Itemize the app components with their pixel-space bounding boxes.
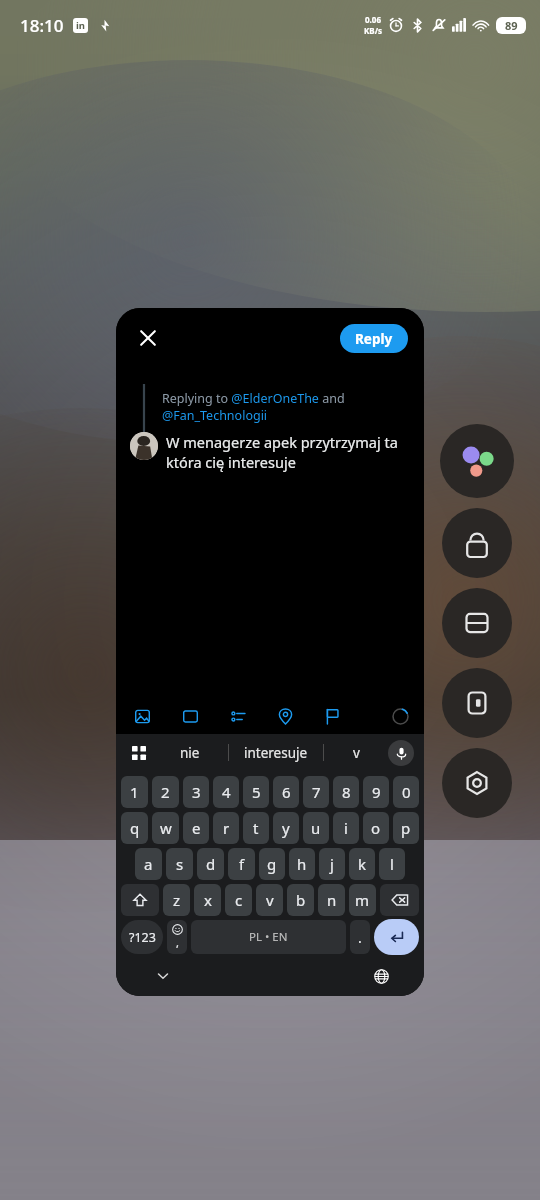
staticText: in xyxy=(76,19,86,32)
staticText: 7 xyxy=(312,782,321,802)
button[interactable]: 6 xyxy=(273,776,299,808)
button[interactable]: d xyxy=(197,848,224,880)
staticText: z xyxy=(173,890,181,910)
staticText: 5 xyxy=(252,782,261,802)
staticText: n xyxy=(327,890,337,910)
staticText: u xyxy=(311,818,321,838)
button[interactable]: g xyxy=(259,848,285,880)
button[interactable]: Change language xyxy=(368,963,394,989)
button[interactable]: z xyxy=(163,884,190,916)
button[interactable]: w xyxy=(152,812,179,844)
staticText: . xyxy=(358,928,362,947)
button[interactable]: 3 xyxy=(183,776,209,808)
button[interactable]: Community note xyxy=(320,704,344,728)
button[interactable]: 8 xyxy=(333,776,359,808)
button[interactable]: 4 xyxy=(213,776,239,808)
button[interactable]: Emoji xyxy=(167,920,187,954)
button[interactable]: Assistant xyxy=(440,424,514,498)
staticText: 1 xyxy=(130,782,139,802)
staticText: 0 xyxy=(402,782,411,802)
staticText: 89 xyxy=(505,18,518,33)
staticText: nie xyxy=(180,744,200,762)
button[interactable]: j xyxy=(319,848,345,880)
button[interactable]: k xyxy=(349,848,375,880)
button[interactable]: Split screen xyxy=(442,588,512,658)
staticText: v xyxy=(353,744,360,762)
staticText: 2 xyxy=(161,782,170,802)
staticText: f xyxy=(239,854,245,874)
staticText: j xyxy=(330,854,334,874)
staticText: s xyxy=(176,854,184,874)
staticText: PL • EN xyxy=(249,929,288,945)
button[interactable]: 0 xyxy=(393,776,419,808)
button[interactable]: p xyxy=(393,812,419,844)
staticText: 18:10 xyxy=(20,14,64,37)
staticText: q xyxy=(130,818,140,838)
button[interactable]: Add photo xyxy=(130,704,154,728)
button[interactable]: i xyxy=(333,812,359,844)
staticText: 9 xyxy=(372,782,381,802)
button[interactable]: f xyxy=(228,848,255,880)
staticText: l xyxy=(390,854,394,874)
button[interactable]: Backspace xyxy=(380,884,419,916)
button[interactable]: 7 xyxy=(303,776,329,808)
staticText: w xyxy=(160,818,172,838)
button[interactable]: x xyxy=(194,884,221,916)
button[interactable]: 5 xyxy=(243,776,269,808)
staticText: g xyxy=(267,854,277,874)
button[interactable]: Hide keyboard xyxy=(150,963,176,989)
button[interactable]: v xyxy=(256,884,283,916)
button[interactable]: Add location xyxy=(273,704,297,728)
staticText: t xyxy=(253,818,259,838)
button[interactable]: Shift xyxy=(121,884,159,916)
button[interactable]: u xyxy=(303,812,329,844)
staticText: , xyxy=(176,935,179,950)
button[interactable]: Add poll xyxy=(226,704,250,728)
button[interactable]: Reply xyxy=(340,324,408,353)
button[interactable]: m xyxy=(349,884,376,916)
button[interactable]: Voice input xyxy=(388,740,414,766)
staticText: 6 xyxy=(282,782,291,802)
staticText: KB/s xyxy=(364,25,382,36)
staticText: interesuje xyxy=(244,744,308,762)
staticText: r xyxy=(223,818,230,838)
button[interactable]: Toolbar xyxy=(126,740,152,766)
button[interactable]: Settings xyxy=(442,748,512,818)
button[interactable]: ?123 xyxy=(121,920,163,954)
button[interactable]: s xyxy=(166,848,193,880)
button[interactable]: h xyxy=(289,848,315,880)
button[interactable]: Picture in picture xyxy=(442,668,512,738)
button[interactable]: Close xyxy=(132,322,164,354)
button[interactable]: Enter xyxy=(374,919,419,955)
staticText: o xyxy=(371,818,381,838)
staticText: b xyxy=(296,890,306,910)
staticText: ?123 xyxy=(129,929,156,946)
button[interactable]: a xyxy=(135,848,162,880)
button[interactable]: Add GIF xyxy=(178,704,202,728)
button[interactable]: e xyxy=(183,812,209,844)
button[interactable]: 9 xyxy=(363,776,389,808)
button[interactable]: . xyxy=(350,920,370,954)
button[interactable]: PL • EN xyxy=(191,920,346,954)
button[interactable]: c xyxy=(225,884,252,916)
button[interactable]: r xyxy=(213,812,239,844)
button[interactable]: l xyxy=(379,848,405,880)
button[interactable]: o xyxy=(363,812,389,844)
button[interactable]: Lock window xyxy=(442,508,512,578)
staticText: k xyxy=(358,854,367,874)
button[interactable]: q xyxy=(121,812,148,844)
staticText: e xyxy=(192,818,201,838)
staticText: W menagerze apek przytrzymaj ta która ci… xyxy=(166,432,410,473)
staticText: Reply xyxy=(355,330,393,348)
button[interactable]: b xyxy=(287,884,314,916)
button[interactable]: t xyxy=(243,812,269,844)
button[interactable]: y xyxy=(273,812,299,844)
button[interactable]: n xyxy=(318,884,345,916)
button[interactable]: 2 xyxy=(152,776,179,808)
staticText: 8 xyxy=(342,782,351,802)
staticText: d xyxy=(206,854,216,874)
staticText: v xyxy=(266,890,274,910)
button[interactable]: 1 xyxy=(121,776,148,808)
staticText: c xyxy=(235,890,243,910)
staticText: 3 xyxy=(192,782,201,802)
